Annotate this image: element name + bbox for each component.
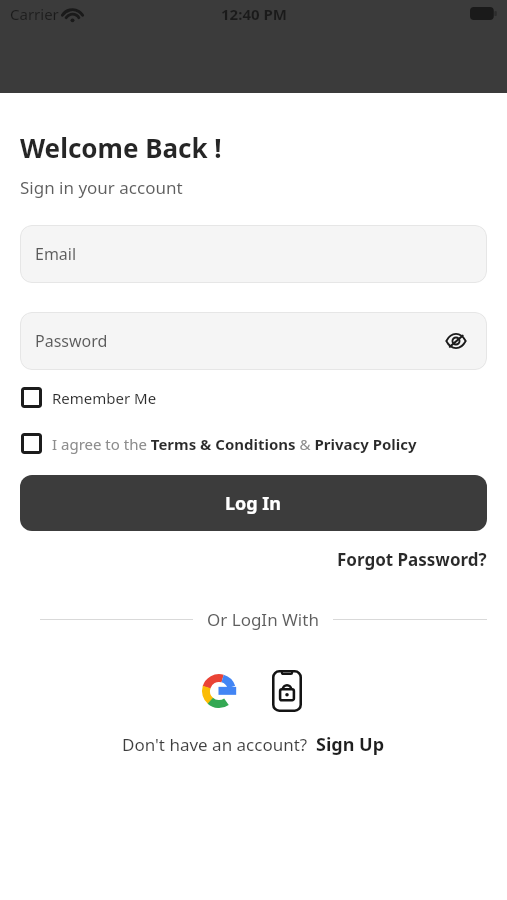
button[interactable]: Password xyxy=(20,312,487,370)
staticText: 12:40 PM xyxy=(221,4,287,24)
button[interactable]: Email xyxy=(20,225,487,283)
button[interactable]: Sign in with device lock xyxy=(265,669,309,713)
button[interactable]: Show password xyxy=(443,328,469,354)
staticText: I agree to the Terms & Conditions & Priv… xyxy=(52,434,417,454)
staticText: Carrier xyxy=(10,4,59,24)
staticText: Sign in your account xyxy=(20,176,183,199)
staticText: Password xyxy=(35,330,108,352)
staticText: Log In xyxy=(225,491,282,516)
staticText: Or LogIn With xyxy=(207,608,319,631)
button[interactable]: I agree to the Terms & Conditions & Priv… xyxy=(20,433,487,454)
staticText: Forgot Password? xyxy=(337,548,487,571)
button[interactable]: Forgot Password? xyxy=(337,548,487,571)
button[interactable]: Sign in with Google xyxy=(199,671,239,711)
staticText: Remember Me xyxy=(52,388,157,408)
button[interactable]: Log In xyxy=(20,475,487,531)
button[interactable]: Sign Up xyxy=(316,732,385,757)
staticText: Don't have an account? xyxy=(122,733,308,756)
staticText: Sign Up xyxy=(316,732,385,757)
button[interactable]: Remember Me xyxy=(20,387,487,408)
staticText: Email xyxy=(35,243,77,265)
staticText: Welcome Back ! xyxy=(20,130,222,165)
